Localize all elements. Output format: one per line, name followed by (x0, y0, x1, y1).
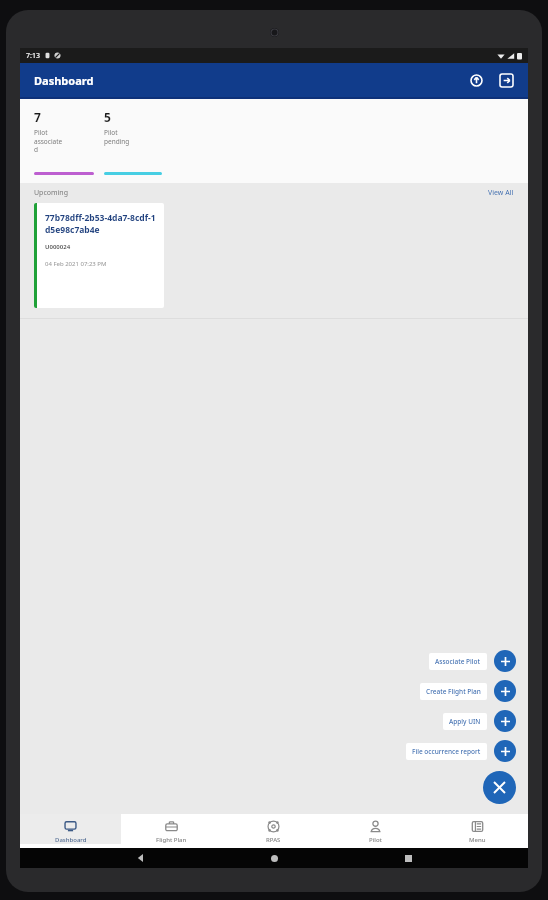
button[interactable]: Close menu (483, 771, 516, 804)
button[interactable]: RPAS (222, 814, 324, 844)
button[interactable]: View All (488, 188, 514, 198)
button[interactable]: Flight Plan (121, 814, 222, 844)
staticText: 77b78dff-2b53-4da7-8cdf-1d5e98c7ab4e (45, 212, 158, 236)
button[interactable]: File occurrence report (406, 743, 487, 760)
button[interactable]: Recents (395, 848, 421, 868)
staticText: Pilot pending (104, 128, 130, 146)
button[interactable]: Apply UIN (443, 713, 487, 730)
staticText: Flight Plan (156, 836, 187, 844)
button[interactable]: Pilot (324, 814, 426, 844)
button[interactable]: Apply UIN (494, 710, 516, 732)
button[interactable]: Back (128, 848, 154, 868)
button[interactable]: Associate Pilot (494, 650, 516, 672)
staticText: Pilot (369, 836, 382, 844)
button[interactable]: File occurrence report (494, 740, 516, 762)
button[interactable]: Dashboard (20, 814, 121, 844)
staticText: Pilot associate d (34, 128, 63, 154)
button[interactable]: Associate Pilot (429, 653, 487, 670)
button[interactable]: Menu (426, 814, 528, 844)
staticText: 7:13 (26, 51, 40, 61)
staticText: Dashboard (34, 73, 94, 88)
staticText: Dashboard (55, 836, 87, 844)
staticText: Associate Pilot (435, 657, 481, 666)
staticText: RPAS (266, 836, 281, 844)
button[interactable]: Create Flight Plan (420, 683, 487, 700)
button[interactable]: Add location (464, 68, 488, 92)
button[interactable]: 7 (34, 109, 94, 183)
staticText: 04 Feb 2021 07:23 PM (45, 260, 107, 268)
staticText: Apply UIN (449, 717, 481, 726)
button[interactable]: Home (261, 848, 287, 868)
button[interactable]: 5 (104, 109, 162, 183)
staticText: 5 (104, 109, 111, 125)
staticText: File occurrence report (412, 747, 481, 756)
staticText: Upcoming (34, 188, 68, 198)
staticText: View All (488, 188, 514, 198)
button[interactable]: 77b78dff-2b53-4da7-8cdf-1d5e98c7ab4e (34, 203, 164, 308)
staticText: 7 (34, 109, 41, 125)
button[interactable]: Logout (494, 68, 518, 92)
button[interactable]: Create Flight Plan (494, 680, 516, 702)
staticText: Menu (469, 836, 486, 844)
staticText: U000024 (45, 243, 71, 251)
staticText: Create Flight Plan (426, 687, 481, 696)
